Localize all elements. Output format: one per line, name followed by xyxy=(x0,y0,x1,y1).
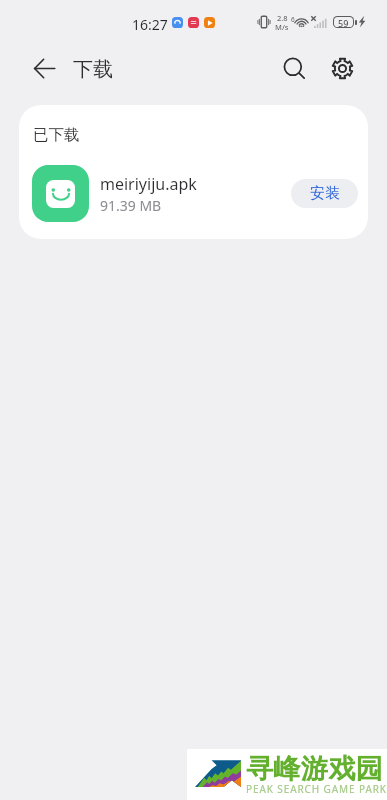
staticText: 59 xyxy=(338,17,349,27)
staticText: 安装 xyxy=(310,184,340,203)
staticText: 已下载 xyxy=(33,125,80,145)
staticText: PEAK SEARCH GAME PARK xyxy=(246,782,387,796)
button[interactable]: 安装 xyxy=(291,179,358,208)
staticText: meiriyiju.apk xyxy=(100,173,197,195)
staticText: M/s xyxy=(275,22,289,32)
button[interactable]: Search xyxy=(273,47,315,89)
button[interactable]: Settings xyxy=(321,47,363,89)
button[interactable]: Back xyxy=(23,47,65,89)
staticText: 91.39 MB xyxy=(100,196,162,215)
staticText: 下载 xyxy=(73,57,113,82)
staticText: 2.8 xyxy=(277,13,288,23)
staticText: 16:27 xyxy=(132,15,168,34)
staticText: 6 xyxy=(291,15,295,24)
staticText: 寻峰游戏园 xyxy=(246,752,383,786)
